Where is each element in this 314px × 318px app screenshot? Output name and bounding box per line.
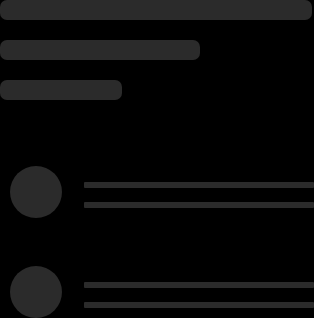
button[interactable]: Loading avatar	[0, 266, 314, 318]
other: Loading avatar	[10, 266, 62, 318]
button[interactable]: Loading avatar	[0, 166, 314, 266]
other: Loading avatar	[10, 166, 62, 218]
